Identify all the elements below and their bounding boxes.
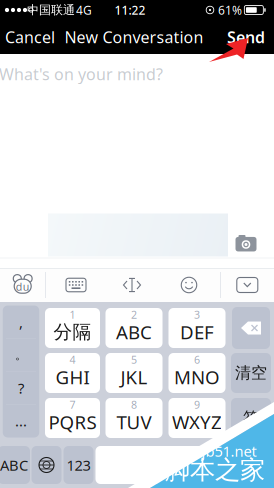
button[interactable]: 。 bbox=[3, 339, 39, 371]
staticText: 分隔 bbox=[53, 320, 91, 343]
button[interactable]: , bbox=[3, 306, 39, 338]
staticText: 61% bbox=[218, 2, 242, 18]
button[interactable]: Keyboard bbox=[46, 268, 106, 302]
staticText: ... bbox=[15, 411, 27, 431]
button[interactable]: Cancel bbox=[3, 20, 57, 54]
button[interactable]: 3 bbox=[168, 308, 225, 348]
button[interactable]: Delete bbox=[232, 307, 270, 349]
staticText: du bbox=[16, 279, 30, 294]
button[interactable]: 符 bbox=[231, 398, 271, 438]
staticText: PQRS bbox=[48, 410, 96, 434]
button[interactable]: Emoji bbox=[158, 268, 220, 302]
staticText: jb51.net bbox=[201, 441, 256, 461]
button[interactable]: 5 bbox=[105, 353, 162, 393]
staticText: TUV bbox=[116, 410, 151, 434]
staticText: GHI bbox=[55, 365, 89, 389]
button[interactable]: Move cursor bbox=[106, 268, 158, 302]
button[interactable]: 6 bbox=[168, 353, 225, 393]
staticText: 4G bbox=[76, 2, 92, 18]
button[interactable]: ABC bbox=[0, 446, 30, 484]
staticText: 3 bbox=[194, 307, 200, 322]
staticText: 11:22 bbox=[114, 2, 145, 18]
staticText: MNO bbox=[174, 365, 220, 389]
staticText: DEF bbox=[180, 320, 214, 344]
button[interactable]: 4 bbox=[45, 353, 100, 393]
staticText: JKL bbox=[120, 365, 147, 389]
button[interactable]: 8 bbox=[105, 398, 162, 438]
staticText: ? bbox=[18, 378, 24, 398]
staticText: ABC bbox=[0, 455, 28, 475]
button[interactable]: 清空 bbox=[231, 353, 271, 393]
button[interactable]: 9 bbox=[168, 398, 225, 438]
button[interactable]: Space bbox=[95, 446, 270, 484]
staticText: 8 bbox=[131, 397, 137, 412]
button[interactable]: 7 bbox=[45, 398, 100, 438]
button[interactable]: ? bbox=[3, 372, 39, 404]
staticText: Cancel bbox=[5, 26, 55, 48]
staticText: 2 bbox=[131, 307, 137, 322]
staticText: 7 bbox=[69, 397, 75, 412]
button[interactable]: 123 bbox=[63, 446, 93, 484]
staticText: 。 bbox=[15, 348, 27, 362]
button[interactable]: 2 bbox=[105, 308, 162, 348]
staticText: ABC bbox=[116, 320, 152, 344]
staticText: 5 bbox=[131, 352, 137, 367]
staticText: 脚本之家 bbox=[165, 454, 265, 485]
staticText: , bbox=[19, 312, 23, 332]
button[interactable]: Hide keyboard bbox=[221, 268, 274, 302]
button[interactable]: Input method bbox=[0, 268, 45, 302]
button[interactable]: Send bbox=[222, 20, 270, 54]
button[interactable]: 1 bbox=[45, 308, 100, 348]
staticText: 符 bbox=[243, 408, 259, 428]
staticText: 4 bbox=[69, 352, 75, 367]
button[interactable]: Switch keyboard bbox=[31, 446, 61, 484]
staticText: WXYZ bbox=[172, 410, 222, 434]
staticText: What's on your mind? bbox=[0, 63, 163, 85]
staticText: 123 bbox=[66, 455, 90, 475]
staticText: New Conversation bbox=[64, 26, 203, 48]
staticText: 6 bbox=[194, 352, 200, 367]
staticText: 清空 bbox=[235, 363, 267, 383]
button[interactable]: ... bbox=[3, 405, 39, 437]
button[interactable]: Camera bbox=[234, 233, 258, 253]
staticText: 中国联通 bbox=[27, 3, 75, 17]
staticText: 9 bbox=[194, 397, 200, 412]
staticText: Send bbox=[227, 26, 265, 48]
staticText: 1 bbox=[69, 307, 75, 322]
